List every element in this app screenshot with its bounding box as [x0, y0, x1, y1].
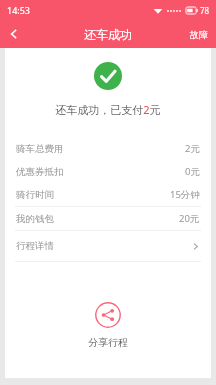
- staticText: 还车成功，已支付2元: [55, 102, 161, 117]
- staticText: 分享行程: [88, 336, 128, 349]
- staticText: 20元: [179, 212, 200, 225]
- staticText: 故障: [190, 29, 208, 40]
- button[interactable]: 故障: [182, 25, 216, 44]
- staticText: 14:53: [7, 4, 31, 16]
- staticText: 骑行时间: [16, 189, 54, 201]
- button[interactable]: 行程详情: [5, 231, 211, 261]
- button[interactable]: 骑行时间: [5, 183, 211, 206]
- other: Share trip: [95, 302, 121, 328]
- button[interactable]: Share trip: [5, 302, 211, 349]
- staticText: 我的钱包: [16, 213, 54, 225]
- button[interactable]: 优惠券抵扣: [5, 160, 211, 183]
- button[interactable]: 骑车总费用: [5, 137, 211, 160]
- staticText: 0元: [185, 165, 200, 178]
- staticText: 15分钟: [170, 188, 200, 201]
- staticText: 骑车总费用: [16, 143, 64, 155]
- staticText: 78: [200, 5, 210, 16]
- staticText: 还车成功: [84, 27, 132, 42]
- staticText: 2元: [185, 142, 200, 155]
- staticText: 优惠券抵扣: [16, 166, 64, 178]
- button[interactable]: 我的钱包: [5, 207, 211, 230]
- staticText: 行程详情: [16, 240, 54, 252]
- button[interactable]: Back: [0, 20, 28, 48]
